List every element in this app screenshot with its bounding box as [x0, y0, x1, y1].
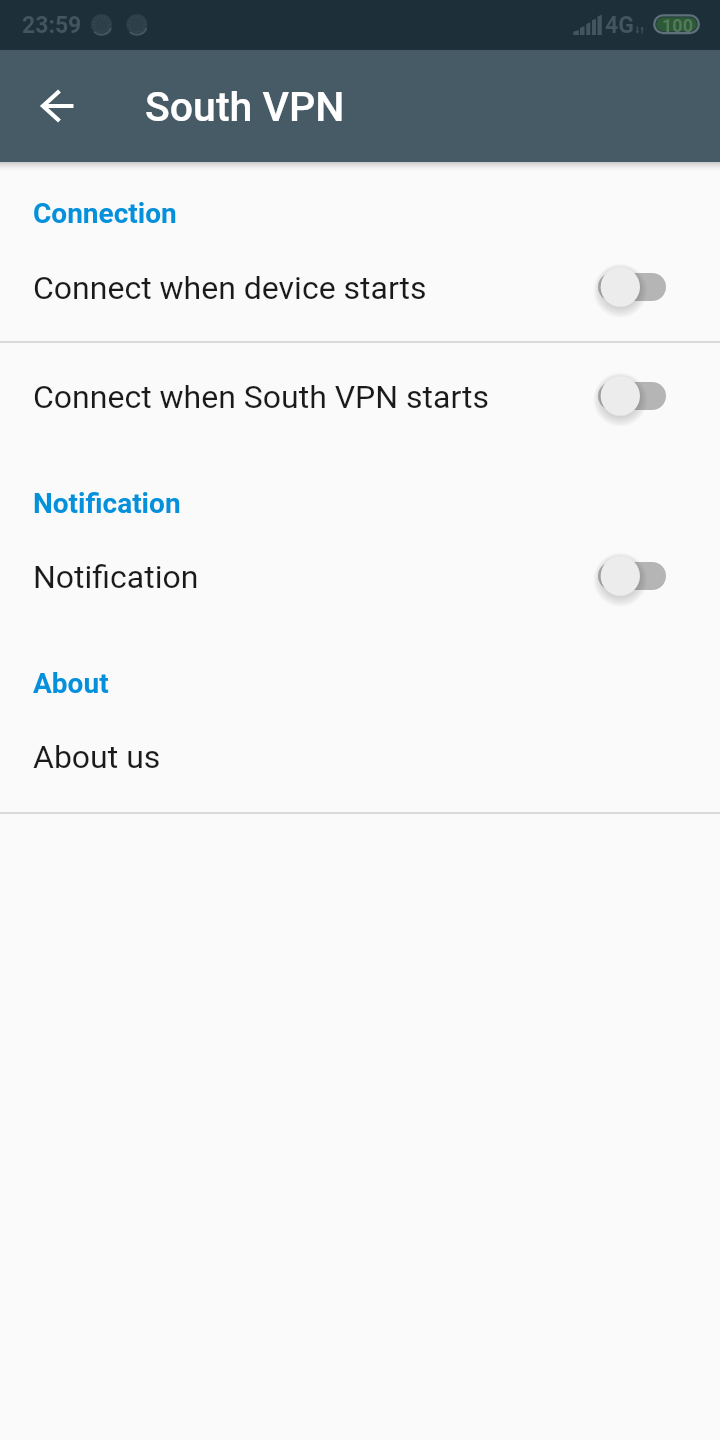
staticText: Notification: [33, 558, 199, 596]
button[interactable]: About us: [0, 720, 720, 793]
staticText: Connection: [33, 197, 177, 230]
button[interactable]: Off: [586, 263, 678, 311]
staticText: About us: [33, 738, 161, 776]
button[interactable]: Notification: [0, 540, 720, 613]
staticText: South VPN: [145, 83, 345, 131]
button[interactable]: Off: [586, 552, 678, 600]
staticText: About: [33, 667, 109, 700]
button[interactable]: Navigate up: [16, 66, 96, 146]
staticText: 4G: [605, 12, 634, 39]
staticText: 23:59: [22, 12, 82, 39]
button[interactable]: Off: [586, 372, 678, 420]
button[interactable]: Connect when device starts: [0, 251, 720, 324]
staticText: Connect when device starts: [33, 269, 427, 307]
staticText: Notification: [33, 487, 181, 520]
button[interactable]: Connect when South VPN starts: [0, 360, 720, 433]
staticText: Connect when South VPN starts: [33, 378, 490, 416]
staticText: 100: [662, 15, 693, 36]
